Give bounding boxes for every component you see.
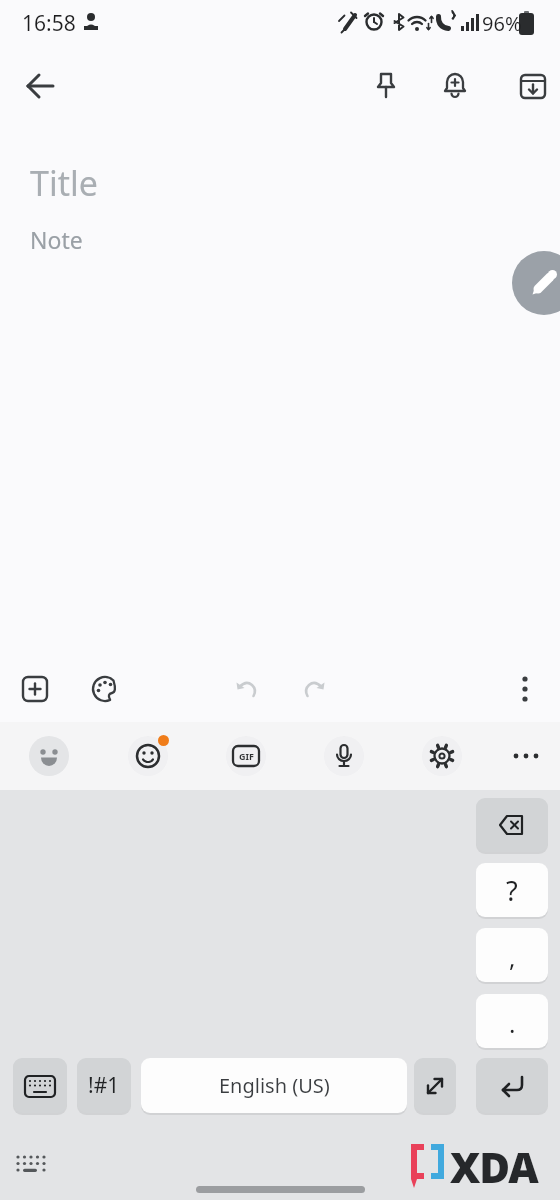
button[interactable] <box>414 1058 456 1113</box>
button[interactable] <box>362 62 410 110</box>
button[interactable]: English (US) <box>141 1058 407 1113</box>
staticText: English (US) <box>219 1072 330 1099</box>
staticText: Title <box>30 160 98 206</box>
button[interactable]: , <box>476 928 548 982</box>
button[interactable] <box>81 665 129 713</box>
staticText: . <box>509 1007 516 1040</box>
button[interactable] <box>222 665 270 713</box>
staticText: GIF <box>239 750 254 762</box>
button[interactable] <box>13 1058 67 1113</box>
staticText: XDA <box>450 1138 538 1195</box>
staticText: , <box>509 941 516 974</box>
button[interactable]: GIF <box>226 736 266 776</box>
button[interactable] <box>422 736 462 776</box>
staticText: ? <box>506 872 518 909</box>
button[interactable]: . <box>476 994 548 1048</box>
staticText: !#1 <box>88 1071 120 1100</box>
button[interactable]: ? <box>476 863 548 917</box>
button[interactable]: !#1 <box>77 1058 131 1113</box>
button[interactable] <box>506 736 546 776</box>
button[interactable] <box>501 665 549 713</box>
button[interactable] <box>29 736 69 776</box>
button[interactable] <box>476 1058 548 1113</box>
staticText: 16:58 <box>22 9 76 38</box>
button[interactable] <box>291 665 339 713</box>
staticText: 96% <box>482 10 522 37</box>
button[interactable] <box>512 251 560 315</box>
button[interactable] <box>476 798 548 852</box>
button[interactable] <box>11 665 59 713</box>
button[interactable] <box>324 736 364 776</box>
staticText: Note <box>30 224 83 255</box>
button[interactable] <box>509 62 557 110</box>
button[interactable] <box>16 62 64 110</box>
button[interactable] <box>128 736 168 776</box>
button[interactable] <box>431 62 479 110</box>
